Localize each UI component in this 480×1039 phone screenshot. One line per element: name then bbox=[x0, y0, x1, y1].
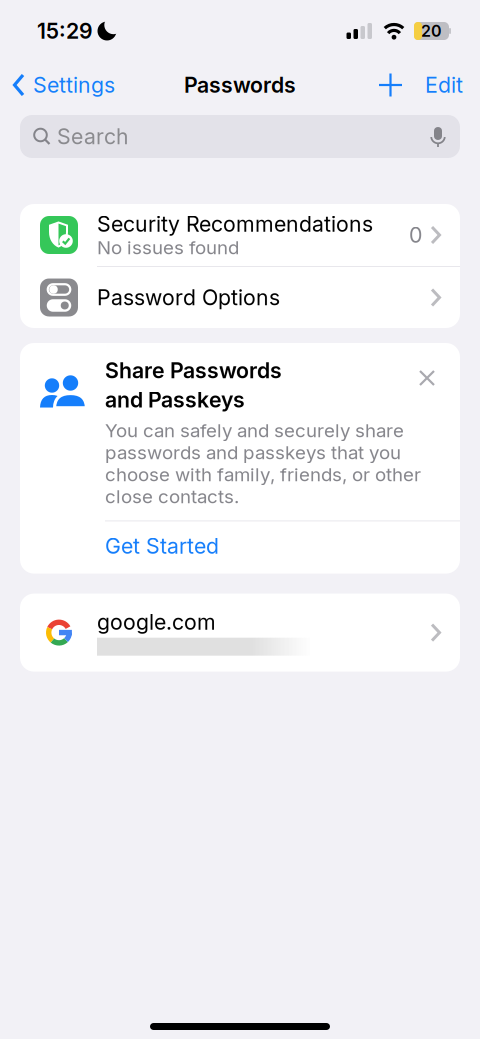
button[interactable]: Add bbox=[379, 73, 402, 96]
staticText: Share Passwords bbox=[105, 358, 282, 383]
staticText: No issues found bbox=[97, 237, 239, 259]
button[interactable]: Edit bbox=[402, 72, 480, 98]
staticText: google.com bbox=[97, 609, 216, 635]
staticText: Edit bbox=[425, 72, 463, 98]
button[interactable]: Dismiss bbox=[419, 343, 460, 386]
staticText: 15:29 bbox=[37, 18, 93, 44]
button[interactable]: Search bbox=[20, 115, 460, 158]
staticText: 20 bbox=[421, 22, 442, 40]
staticText: Search bbox=[57, 124, 129, 149]
button[interactable]: google.com bbox=[20, 594, 460, 672]
button[interactable]: Back to Settings bbox=[0, 72, 115, 98]
button[interactable]: Security Recommendations bbox=[20, 204, 460, 266]
staticText: 0 bbox=[409, 222, 422, 248]
staticText: Passwords bbox=[184, 72, 296, 98]
staticText: Security Recommendations bbox=[97, 211, 373, 237]
staticText: Password Options bbox=[97, 285, 280, 310]
button[interactable]: Password Options bbox=[20, 267, 460, 328]
staticText: Settings bbox=[33, 72, 115, 98]
staticText: You can safely and securely share passwo… bbox=[105, 419, 421, 507]
staticText: Get Started bbox=[105, 533, 219, 559]
button[interactable]: Get Started bbox=[20, 521, 219, 574]
staticText: and Passkeys bbox=[105, 387, 245, 412]
